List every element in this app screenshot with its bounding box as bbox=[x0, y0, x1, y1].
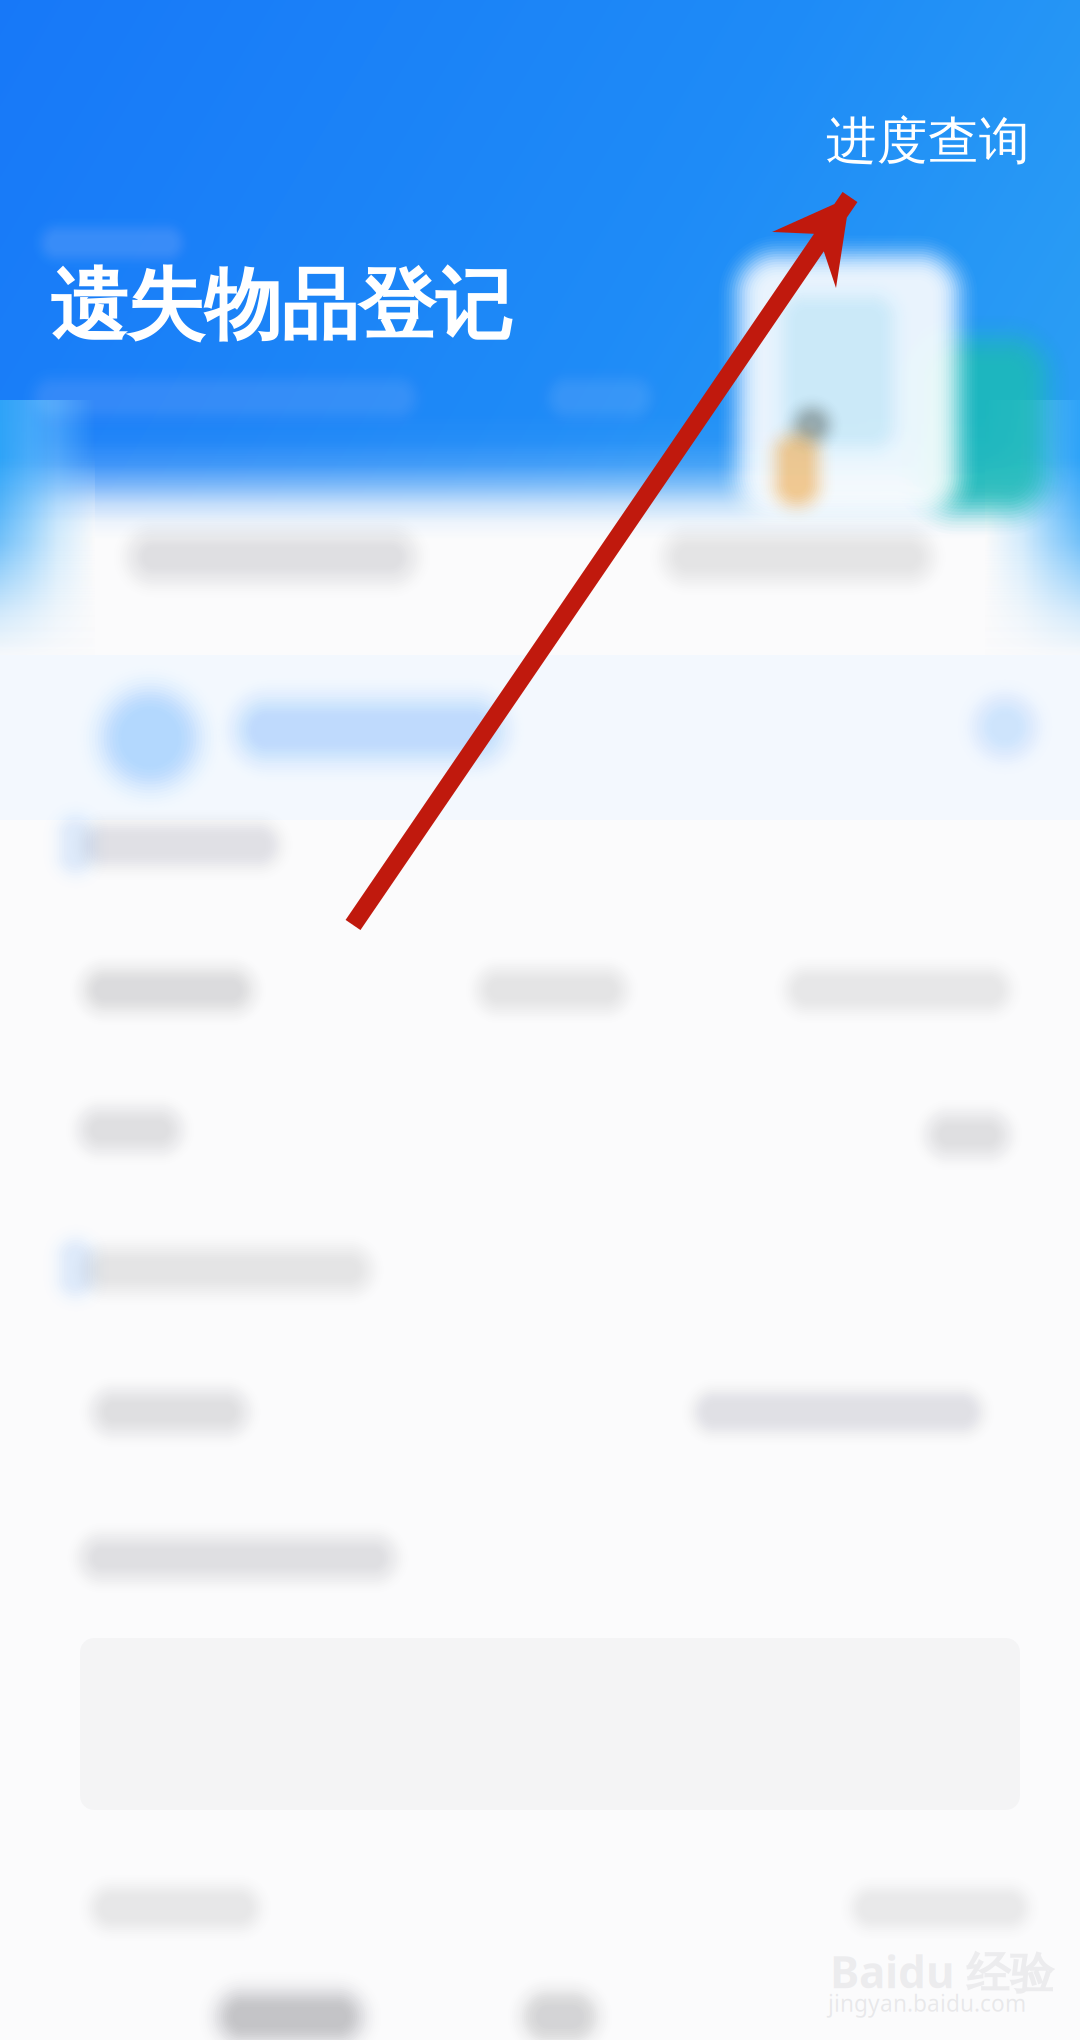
staticText: jingyan.baidu.com bbox=[828, 1988, 1026, 2018]
staticText: 进度查询 bbox=[826, 110, 1030, 172]
staticText: Baidu 经验 bbox=[830, 1942, 1054, 2001]
staticText: 遗失物品登记 bbox=[50, 258, 512, 353]
